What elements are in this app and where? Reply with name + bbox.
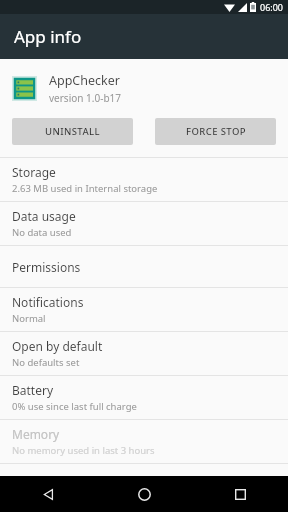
button[interactable]: Home xyxy=(96,476,192,512)
button[interactable]: Memory xyxy=(0,420,288,463)
staticText: version 1.0-b17 xyxy=(49,91,121,105)
button[interactable]: Data usage xyxy=(0,202,288,245)
button[interactable]: Open by default xyxy=(0,332,288,375)
staticText: No memory used in last 3 hours xyxy=(12,444,155,457)
staticText: 2.63 MB used in Internal storage xyxy=(12,182,158,195)
staticText: No defaults set xyxy=(12,356,80,369)
staticText: 06:00 xyxy=(260,1,284,13)
staticText: Normal xyxy=(12,312,46,325)
staticText: FORCE STOP xyxy=(186,125,246,138)
staticText: AppChecker xyxy=(49,72,120,89)
staticText: UNINSTALL xyxy=(45,125,100,138)
staticText: Notifications xyxy=(12,294,84,310)
staticText: App info xyxy=(14,25,82,48)
staticText: No data used xyxy=(12,226,72,239)
button[interactable]: Permissions xyxy=(0,246,288,287)
staticText: Memory xyxy=(12,426,60,442)
button[interactable]: AppChecker xyxy=(0,59,288,118)
staticText: 0% use since last full charge xyxy=(12,400,137,413)
staticText: Storage xyxy=(12,164,56,180)
button[interactable]: UNINSTALL xyxy=(12,118,133,145)
staticText: Battery xyxy=(12,382,54,398)
staticText: Permissions xyxy=(12,259,81,275)
button[interactable]: Recent apps xyxy=(192,476,288,512)
button[interactable]: FORCE STOP xyxy=(155,118,276,145)
button[interactable]: Notifications xyxy=(0,288,288,331)
button[interactable]: Battery xyxy=(0,376,288,419)
staticText: Data usage xyxy=(12,208,76,224)
button[interactable]: Storage xyxy=(0,158,288,201)
button[interactable]: Back xyxy=(0,476,96,512)
staticText: Open by default xyxy=(12,338,103,354)
